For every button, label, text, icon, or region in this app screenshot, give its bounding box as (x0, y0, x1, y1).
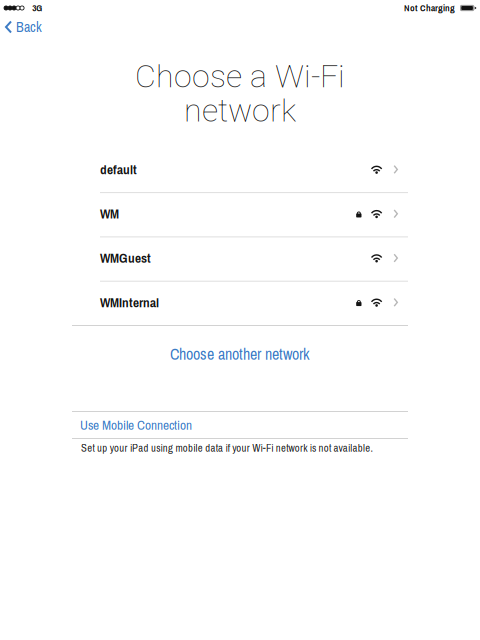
staticText: Set up your iPad using mobile data if yo… (81, 441, 372, 455)
staticText: Back (16, 18, 42, 36)
staticText: WM (100, 205, 119, 223)
staticText: default (100, 160, 137, 178)
staticText: WMGuest (100, 249, 151, 267)
button[interactable]: default (0, 149, 480, 192)
button[interactable]: WM (0, 193, 480, 236)
button[interactable]: Choose another network (150, 343, 330, 365)
staticText: Use Mobile Connection (80, 416, 192, 434)
staticText: network (184, 92, 296, 129)
staticText: Not Charging (404, 2, 455, 14)
staticText: Choose a Wi-Fi (135, 57, 345, 95)
staticText: WMInternal (100, 293, 159, 311)
button[interactable]: WMGuest (0, 237, 480, 281)
button[interactable]: Use Mobile Connection (0, 412, 480, 438)
staticText: Choose another network (170, 343, 310, 365)
button[interactable]: Back (0, 16, 52, 38)
staticText: 3G (32, 2, 42, 14)
button[interactable]: WMInternal (0, 282, 480, 325)
